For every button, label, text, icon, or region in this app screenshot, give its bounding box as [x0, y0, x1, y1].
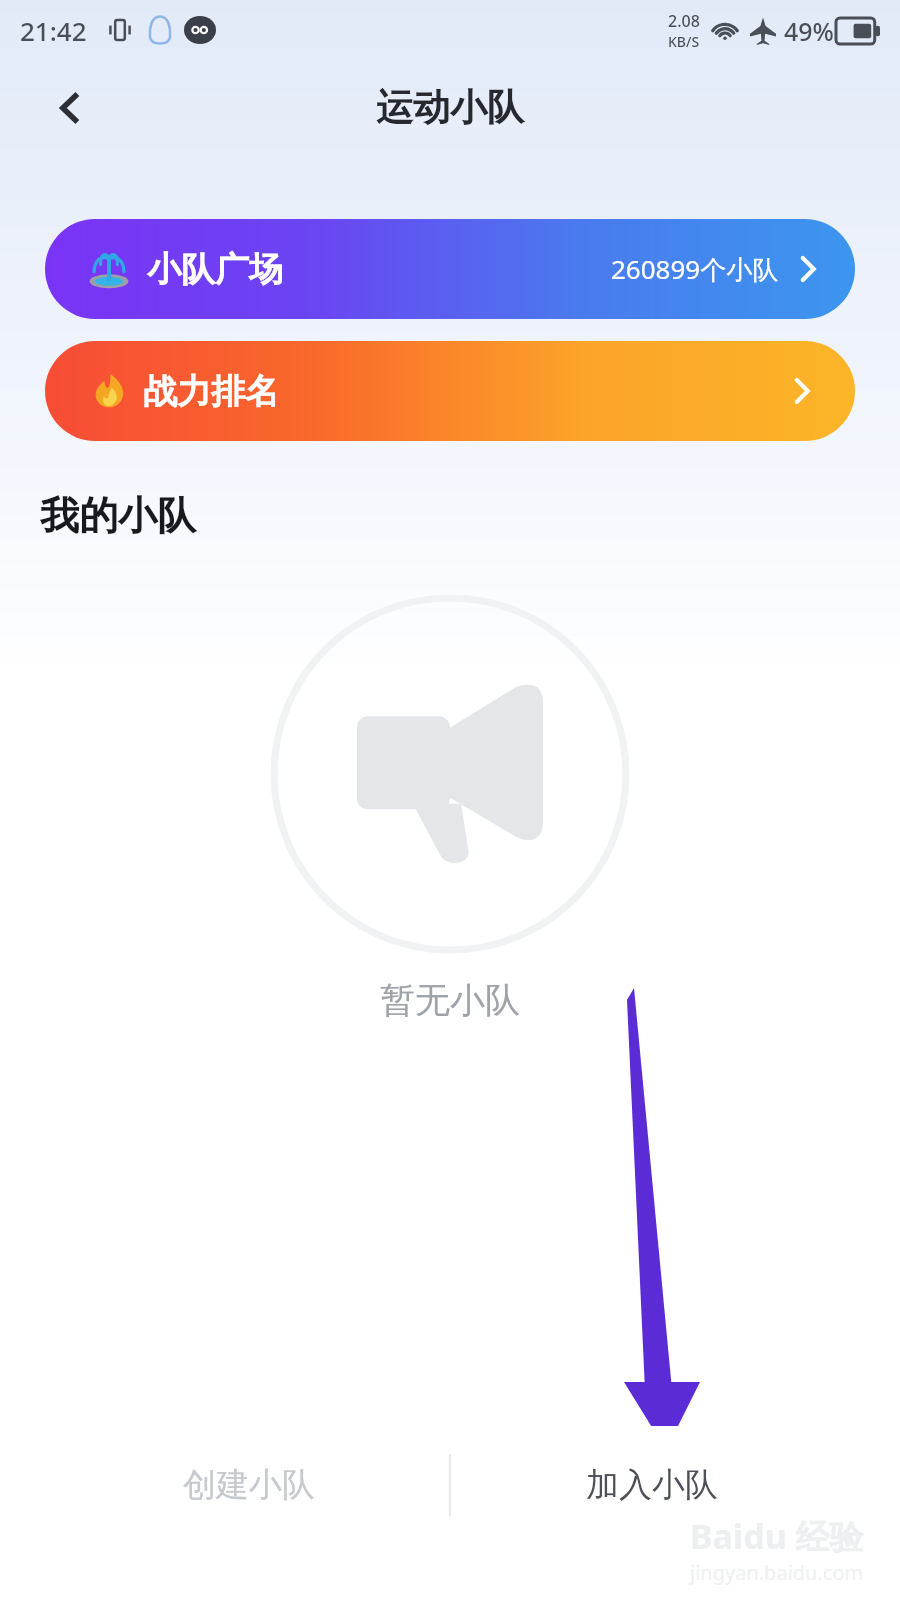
button[interactable]: 创建小队: [48, 1426, 449, 1544]
staticText: 创建小队: [183, 1464, 315, 1506]
staticText: jingyan.baidu.com: [690, 1559, 864, 1586]
staticText: 加入小队: [586, 1464, 718, 1506]
staticText: 2.08: [668, 10, 700, 32]
staticText: 我的小队: [40, 491, 196, 540]
staticText: 49%: [784, 14, 834, 48]
staticText: Baidu 经验: [690, 1513, 864, 1559]
staticText: 小队广场: [147, 248, 283, 291]
staticText: 21:42: [20, 13, 87, 48]
button[interactable]: 战力排名: [45, 341, 855, 441]
staticText: 运动小队: [376, 84, 524, 131]
button[interactable]: 小队广场: [45, 219, 855, 319]
staticText: 暂无小队: [380, 978, 520, 1022]
button[interactable]: 加入小队: [451, 1426, 852, 1544]
button[interactable]: Back: [40, 78, 100, 138]
staticText: KB/S: [668, 32, 700, 51]
staticText: 260899个小队: [611, 251, 779, 287]
staticText: 战力排名: [143, 370, 279, 413]
